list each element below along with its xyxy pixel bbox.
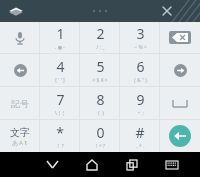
button[interactable]: 9 (120, 87, 160, 119)
button[interactable]: IME logo (6, 1, 26, 21)
staticText: , * . (136, 143, 145, 150)
button[interactable]: 0 (80, 120, 120, 152)
other: Backspace (169, 31, 191, 44)
staticText: 2 (96, 24, 105, 43)
staticText: A (19, 139, 23, 147)
staticText: 文字 (10, 126, 30, 139)
staticText: ~ % ^ (134, 44, 147, 51)
staticText: ( & " ) (134, 77, 147, 84)
staticText: 9 (136, 90, 145, 109)
button[interactable]: 3 (120, 22, 160, 53)
staticText: ! + ? (96, 143, 105, 150)
button[interactable]: Cursor right (160, 54, 200, 86)
button[interactable]: 8 (80, 87, 120, 119)
other: Enter (169, 125, 191, 147)
staticText: 1 (56, 24, 65, 43)
other: Voice input (9, 27, 31, 49)
button[interactable]: Close keyboard (158, 2, 176, 20)
button[interactable]: 4 (40, 54, 80, 86)
staticText: 記号 (11, 98, 29, 109)
button[interactable]: Home (72, 152, 112, 177)
staticText: [ ' ' ] (55, 77, 65, 84)
button[interactable]: Backspace (160, 22, 200, 53)
button[interactable]: Switch keyboard (152, 152, 192, 177)
staticText: ( ) (98, 110, 104, 117)
staticText: 7 (56, 90, 65, 109)
staticText: ! ? (57, 143, 64, 150)
button[interactable]: Cursor left (0, 54, 40, 86)
staticText: あ (12, 139, 19, 147)
other: Cursor right (174, 64, 187, 77)
button[interactable]: 7 (40, 87, 80, 119)
button[interactable]: Switch input mode (0, 120, 40, 152)
other: Switch input mode (10, 126, 30, 147)
staticText: < $ ¥ > (92, 77, 108, 84)
staticText: 1 (24, 139, 28, 147)
button[interactable]: 1 (40, 22, 80, 53)
staticText: * (56, 123, 64, 142)
button[interactable]: 6 (120, 54, 160, 86)
staticText: • : (138, 110, 144, 117)
button[interactable]: Voice input (0, 22, 40, 53)
staticText: # (135, 123, 145, 142)
button[interactable]: Space (160, 87, 200, 119)
staticText: / : _ (96, 44, 105, 51)
staticText: 0 (96, 123, 105, 142)
staticText: 5 (96, 57, 105, 76)
staticText: 6 (136, 57, 145, 76)
button[interactable]: Enter (160, 120, 200, 152)
staticText: 8 (96, 90, 105, 109)
button[interactable]: # (120, 120, 160, 152)
button[interactable]: * (40, 120, 80, 152)
button[interactable]: 2 (80, 22, 120, 53)
staticText: . ● - (55, 44, 65, 51)
button[interactable]: Back (32, 152, 72, 177)
button[interactable]: Recents (112, 152, 152, 177)
button[interactable]: 記号 (0, 87, 40, 119)
button[interactable]: 5 (80, 54, 120, 86)
other: Space (173, 100, 187, 107)
staticText: 3 (136, 24, 145, 43)
other: Cursor left (14, 64, 27, 77)
staticText: 4 (56, 57, 65, 76)
staticText: \ | ¦ (55, 110, 65, 117)
